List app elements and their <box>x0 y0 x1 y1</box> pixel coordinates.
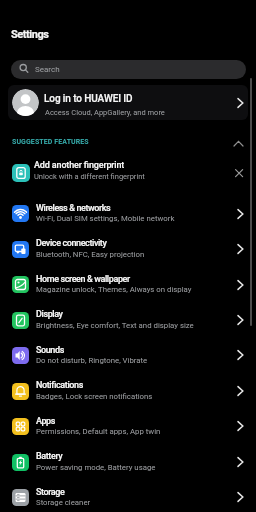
staticText: Storage cleaner <box>36 498 91 507</box>
staticText: Wi-Fi, Dual SIM settings, Mobile network <box>36 214 175 223</box>
staticText: SUGGESTED FEATURES <box>12 138 89 146</box>
staticText: Sounds <box>36 345 64 356</box>
staticText: Permissions, Default apps, App twin <box>36 427 161 436</box>
staticText: Search <box>35 65 60 74</box>
staticText: Add another fingerprint <box>34 160 125 171</box>
staticText: Log in to HUAWEI ID <box>44 93 133 105</box>
staticText: Display <box>36 309 63 320</box>
staticText: Access Cloud, AppGallery, and more <box>45 108 165 117</box>
staticText: Brightness, Eye comfort, Text and displa… <box>36 321 194 330</box>
staticText: Storage <box>36 487 65 498</box>
staticText: Device connectivity <box>36 238 107 249</box>
staticText: Magazine unlock, Themes, Always on displ… <box>36 285 192 294</box>
staticText: Do not disturb, Ringtone, Vibrate <box>36 356 148 365</box>
staticText: Battery <box>36 451 63 462</box>
staticText: Wireless & networks <box>36 203 111 214</box>
staticText: Notifications <box>36 380 83 391</box>
staticText: Unlock with a different fingerprint <box>34 172 145 181</box>
staticText: Home screen & wallpaper <box>36 274 130 285</box>
staticText: Bluetooth, NFC, Easy projection <box>36 250 145 259</box>
staticText: Power saving mode, Battery usage <box>36 463 156 472</box>
staticText: Badges, Lock screen notifications <box>36 392 153 401</box>
staticText: Settings <box>11 28 49 41</box>
staticText: Apps <box>36 416 55 427</box>
